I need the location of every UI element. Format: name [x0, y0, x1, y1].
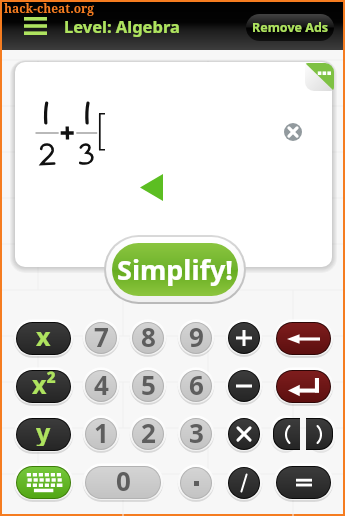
staticText: x [36, 323, 51, 350]
staticText: Simplify! [117, 251, 233, 288]
button[interactable]: Decimal point [181, 468, 211, 498]
staticText: 4 [94, 371, 109, 397]
button[interactable]: 5 [133, 371, 163, 401]
button[interactable]: Open parenthesis [274, 419, 300, 449]
staticText: 0 [116, 467, 131, 494]
staticText: 6 [189, 371, 204, 397]
button[interactable]: Divide [229, 468, 259, 498]
staticText: 9 [189, 323, 204, 349]
button[interactable]: Simplify! [112, 243, 238, 296]
button[interactable]: Enter [277, 371, 330, 402]
button[interactable]: 4 [86, 371, 116, 401]
button[interactable]: Equals [277, 467, 330, 498]
button[interactable]: 9 [181, 323, 211, 353]
button[interactable]: Plus [229, 323, 259, 353]
button[interactable]: y [17, 419, 70, 450]
staticText: x² [32, 371, 56, 398]
button[interactable]: Close parenthesis [306, 419, 332, 449]
button[interactable]: Back [140, 174, 163, 201]
button[interactable]: Minus [229, 371, 259, 401]
button[interactable]: 8 [133, 323, 163, 353]
button[interactable]: 3 [181, 419, 211, 449]
staticText: Remove Ads [252, 19, 329, 36]
button[interactable]: Remove Ads [246, 14, 334, 41]
button[interactable]: More options [305, 63, 334, 91]
button[interactable]: 7 [86, 323, 116, 353]
staticText: 7 [94, 323, 109, 349]
button[interactable]: x [17, 323, 70, 354]
button[interactable]: 1 [86, 419, 116, 449]
button[interactable]: Backspace [277, 323, 330, 354]
staticText: hack-cheat.org [4, 0, 95, 16]
staticText: 5 [141, 371, 156, 397]
button[interactable]: 6 [181, 371, 211, 401]
button[interactable]: Menu [16, 11, 54, 41]
staticText: 1 [94, 419, 109, 445]
button[interactable]: 2 [133, 419, 163, 449]
staticText: Level: Algebra [64, 15, 180, 37]
button[interactable]: Multiply [229, 419, 259, 449]
button[interactable]: Clear [284, 123, 302, 141]
button[interactable]: Keyboard [17, 467, 70, 498]
staticText: 3 [189, 419, 204, 445]
staticText: 2 [141, 419, 156, 445]
staticText: y [36, 419, 51, 446]
staticText: 8 [141, 323, 156, 349]
button[interactable]: 0 [86, 467, 160, 498]
button[interactable]: x² [17, 371, 70, 402]
